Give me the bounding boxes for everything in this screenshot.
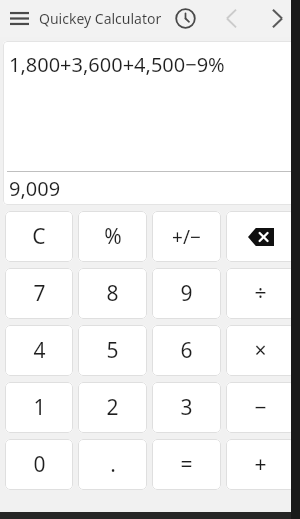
button[interactable]: +/− bbox=[152, 211, 221, 262]
button[interactable]: 6 bbox=[152, 325, 221, 376]
staticText: ÷ bbox=[254, 279, 267, 308]
staticText: 4 bbox=[33, 336, 46, 365]
staticText: 7 bbox=[33, 279, 46, 308]
staticText: 3 bbox=[180, 393, 193, 422]
button[interactable]: = bbox=[152, 439, 221, 490]
button[interactable]: % bbox=[78, 211, 147, 262]
button[interactable]: 7 bbox=[5, 268, 73, 319]
staticText: 1,800+3,600+4,500−9% bbox=[9, 51, 225, 78]
staticText: +/− bbox=[172, 224, 201, 250]
button[interactable]: − bbox=[226, 382, 295, 433]
staticText: − bbox=[254, 393, 267, 422]
button[interactable]: Menu bbox=[0, 0, 39, 37]
button[interactable]: + bbox=[226, 439, 295, 490]
button[interactable]: × bbox=[226, 325, 295, 376]
button[interactable]: 0 bbox=[5, 439, 73, 490]
button[interactable]: 1,800+3,600+4,500−9% bbox=[3, 41, 297, 205]
staticText: Quickey Calculator bbox=[39, 9, 162, 28]
staticText: 8 bbox=[106, 279, 119, 308]
staticText: × bbox=[254, 336, 267, 365]
staticText: 5 bbox=[106, 336, 119, 365]
staticText: 2 bbox=[106, 393, 119, 422]
button[interactable]: 1 bbox=[5, 382, 73, 433]
button[interactable]: 3 bbox=[152, 382, 221, 433]
button[interactable]: 5 bbox=[78, 325, 147, 376]
staticText: 6 bbox=[180, 336, 193, 365]
staticText: 9,009 bbox=[9, 175, 61, 202]
staticText: 9 bbox=[180, 279, 193, 308]
staticText: % bbox=[104, 222, 122, 251]
button[interactable]: C bbox=[5, 211, 73, 262]
button[interactable]: Next bbox=[254, 0, 300, 37]
staticText: + bbox=[254, 450, 267, 479]
button[interactable]: 9 bbox=[152, 268, 221, 319]
button[interactable]: History bbox=[168, 0, 202, 37]
button[interactable]: 2 bbox=[78, 382, 147, 433]
staticText: 1 bbox=[33, 393, 46, 422]
staticText: = bbox=[180, 450, 193, 479]
button[interactable]: . bbox=[78, 439, 147, 490]
button[interactable]: Previous bbox=[208, 0, 254, 37]
staticText: 0 bbox=[33, 450, 46, 479]
button[interactable]: 4 bbox=[5, 325, 73, 376]
staticText: C bbox=[32, 222, 46, 251]
button[interactable]: Backspace bbox=[226, 211, 295, 262]
staticText: . bbox=[110, 450, 116, 479]
button[interactable]: 8 bbox=[78, 268, 147, 319]
button[interactable]: ÷ bbox=[226, 268, 295, 319]
